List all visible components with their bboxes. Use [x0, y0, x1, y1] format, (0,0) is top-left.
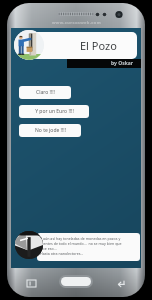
staticText: fuentes de todo el mundo... no se muy bi…: [40, 241, 122, 246]
staticText: www.cursosweb.com: [52, 20, 101, 25]
button[interactable]: El Pozo: [32, 32, 137, 59]
staticText: by Oskar: [111, 60, 134, 67]
staticText: Y por un Euro !!!!: [35, 108, 74, 115]
button[interactable]: Y por un Euro !!!!: [19, 105, 89, 118]
button[interactable]: El Pozo avatar: [14, 30, 44, 60]
staticText: El Pozo: [80, 38, 117, 53]
button[interactable]: Y aún así hay toneladas de monedas en po…: [37, 233, 140, 261]
button[interactable]: Claro !!!!: [19, 86, 71, 99]
staticText: Hasta otra nanolectores...: [40, 251, 84, 256]
staticText: Y aún así hay toneladas de monedas en po…: [40, 236, 121, 241]
button[interactable]: Author photo: [15, 231, 43, 259]
staticText: No te jode !!!!: [35, 127, 66, 134]
button[interactable]: Back: [113, 275, 129, 291]
staticText: Claro !!!!: [36, 89, 55, 96]
button[interactable]: Home: [59, 275, 93, 288]
staticText: dice eso...: [40, 246, 57, 251]
button[interactable]: Menu: [23, 275, 39, 291]
button[interactable]: No te jode !!!!: [19, 124, 81, 137]
